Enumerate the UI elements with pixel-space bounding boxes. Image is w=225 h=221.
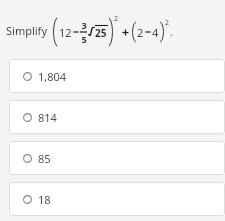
- button[interactable]: Select 814: [9, 100, 225, 134]
- staticText: Simplify: [6, 23, 47, 38]
- staticText: .: [170, 25, 173, 39]
- staticText: 25: [95, 26, 107, 40]
- staticText: 5: [81, 33, 87, 45]
- staticText: 12: [59, 25, 72, 40]
- other: Select 85: [23, 154, 32, 163]
- button[interactable]: Select 1,804: [9, 59, 225, 93]
- other: Select 18: [23, 195, 32, 204]
- staticText: 2: [137, 25, 144, 40]
- staticText: 1,804: [38, 69, 67, 84]
- staticText: 3: [81, 19, 87, 31]
- staticText: 85: [38, 151, 51, 166]
- staticText: 2: [114, 14, 119, 24]
- staticText: 18: [38, 192, 51, 207]
- other: Select 1,804: [23, 72, 32, 81]
- staticText: 2: [165, 18, 170, 28]
- button[interactable]: Select 85: [9, 141, 225, 175]
- staticText: 4: [152, 25, 159, 40]
- other: Select 814: [23, 113, 32, 122]
- button[interactable]: Select 18: [9, 182, 225, 216]
- staticText: 814: [38, 110, 57, 125]
